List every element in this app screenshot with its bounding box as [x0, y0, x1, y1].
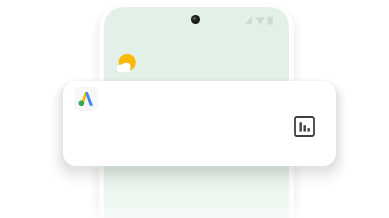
button[interactable]: Google Ads — [74, 87, 98, 111]
other: Weather — [115, 53, 141, 75]
button[interactable]: Google Ads — [63, 81, 336, 166]
button[interactable]: Analytics — [294, 116, 315, 137]
